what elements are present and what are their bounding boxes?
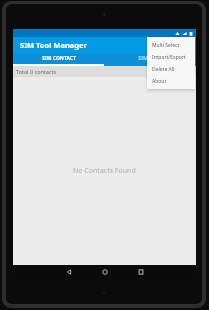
button[interactable]: More options bbox=[182, 37, 196, 53]
button[interactable]: SIM INFO bbox=[104, 53, 196, 64]
button[interactable]: Recent apps bbox=[123, 265, 159, 279]
button[interactable]: Multi Select bbox=[147, 39, 195, 51]
staticText: SIM CONTACT bbox=[42, 55, 76, 62]
button[interactable]: SIM CONTACT bbox=[13, 53, 104, 64]
staticText: SIM Tool Manager bbox=[20, 40, 87, 50]
button[interactable]: Back bbox=[51, 265, 87, 279]
staticText: Import/Export bbox=[152, 54, 186, 61]
staticText: About bbox=[152, 78, 167, 85]
staticText: Multi Select bbox=[152, 42, 180, 49]
button[interactable]: Total 0 contacts bbox=[13, 66, 196, 77]
staticText: Delete All bbox=[152, 66, 175, 73]
button[interactable]: Delete All bbox=[147, 63, 195, 75]
staticText: Total 0 contacts bbox=[16, 68, 57, 75]
button[interactable]: Import/Export bbox=[147, 51, 195, 63]
staticText: SIM INFO bbox=[138, 55, 162, 62]
button[interactable]: Home bbox=[87, 265, 123, 279]
button[interactable]: About bbox=[147, 75, 195, 87]
staticText: No Contacts Found bbox=[73, 166, 136, 176]
